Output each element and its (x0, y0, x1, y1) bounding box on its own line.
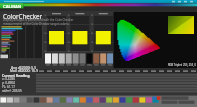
staticText: Display analysis is performed with the C… (3, 18, 74, 26)
staticText: Avg dE2000: 5.5 (11, 65, 37, 70)
staticText: ColorChecker (3, 12, 43, 20)
staticText: Max dE2000: 16.9 (10, 68, 38, 73)
staticText: x: 0.4286 y: 0.4904 YL: 61.17 cd/m²: 205… (2, 77, 22, 93)
staticText: Current Reading (2, 73, 30, 78)
staticText: RGB Triplet: 255, 255, 0 (168, 63, 197, 67)
button[interactable]: Menu (0, 7, 40, 11)
staticText: CALMAN (3, 4, 22, 10)
